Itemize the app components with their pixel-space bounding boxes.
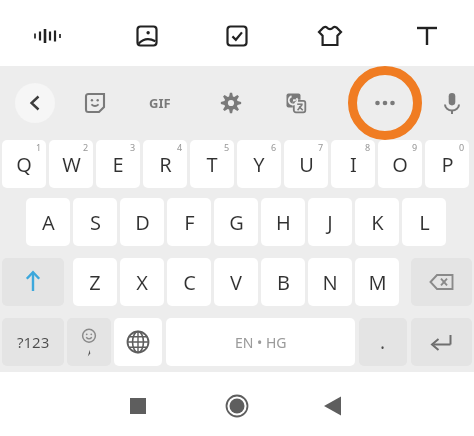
button[interactable]: K — [355, 198, 399, 246]
staticText: C — [183, 269, 196, 296]
button[interactable]: F — [167, 198, 211, 246]
staticText: Y — [253, 151, 265, 178]
button[interactable]: C — [167, 258, 211, 306]
button[interactable]: P — [425, 140, 469, 188]
staticText: . — [380, 329, 386, 355]
button[interactable]: Image — [125, 14, 169, 58]
button[interactable]: Backspace — [411, 258, 472, 306]
staticText: 4 — [177, 141, 183, 153]
button[interactable]: Shift — [2, 258, 64, 306]
staticText: Z — [89, 269, 101, 296]
button[interactable]: A — [26, 198, 70, 246]
button[interactable]: Stickers — [308, 14, 352, 58]
button[interactable]: E — [96, 140, 140, 188]
button[interactable]: . — [359, 318, 407, 366]
button[interactable]: Text — [405, 14, 449, 58]
button[interactable]: W — [49, 140, 93, 188]
button[interactable]: D — [120, 198, 164, 246]
button[interactable]: X — [120, 258, 164, 306]
staticText: U — [299, 151, 314, 178]
button[interactable]: H — [261, 198, 305, 246]
staticText: S — [90, 209, 101, 236]
staticText: G — [229, 209, 244, 236]
button[interactable]: Translate — [274, 81, 318, 125]
staticText: B — [277, 269, 290, 296]
staticText: EN • HG — [235, 333, 287, 352]
button[interactable]: Home — [217, 386, 257, 426]
staticText: H — [276, 209, 291, 236]
staticText: 5 — [224, 141, 230, 153]
button[interactable]: Q — [2, 140, 46, 188]
staticText: V — [230, 269, 242, 296]
button[interactable]: O — [378, 140, 422, 188]
staticText: GIF — [149, 94, 171, 112]
button[interactable]: V — [214, 258, 258, 306]
staticText: J — [327, 209, 333, 236]
button[interactable]: J — [308, 198, 352, 246]
staticText: 8 — [365, 141, 371, 153]
button[interactable]: B — [261, 258, 305, 306]
button[interactable]: More options — [363, 81, 407, 125]
staticText: F — [184, 209, 195, 236]
button[interactable]: Back — [15, 83, 55, 123]
staticText: ?123 — [17, 332, 50, 352]
staticText: 9 — [412, 141, 418, 153]
button[interactable]: L — [402, 198, 446, 246]
button[interactable]: Voice input — [430, 81, 474, 125]
button[interactable]: Y — [237, 140, 281, 188]
button[interactable]: Back — [313, 386, 353, 426]
button[interactable]: S — [73, 198, 117, 246]
staticText: R — [159, 151, 172, 178]
button[interactable]: Settings — [209, 81, 253, 125]
staticText: L — [419, 209, 430, 236]
button[interactable]: GIF — [138, 81, 182, 125]
button[interactable]: Tasks — [215, 14, 259, 58]
staticText: X — [136, 269, 148, 296]
button[interactable]: ?123 — [2, 318, 64, 366]
staticText: I — [350, 151, 357, 178]
staticText: 1 — [36, 141, 42, 153]
button[interactable]: Emoji — [67, 318, 111, 366]
staticText: D — [135, 209, 150, 236]
button[interactable]: R — [143, 140, 187, 188]
button[interactable]: Change language — [114, 318, 162, 366]
staticText: N — [322, 269, 338, 296]
button[interactable]: U — [284, 140, 328, 188]
staticText: 6 — [271, 141, 277, 153]
button[interactable]: G — [214, 198, 258, 246]
button[interactable]: EN • HG — [166, 318, 355, 366]
button[interactable]: Recent apps — [118, 386, 158, 426]
staticText: E — [112, 151, 124, 178]
button[interactable]: N — [308, 258, 352, 306]
button[interactable]: T — [190, 140, 234, 188]
staticText: 0 — [459, 141, 465, 153]
staticText: P — [441, 151, 454, 178]
staticText: A — [42, 209, 55, 236]
staticText: M — [368, 269, 387, 296]
button[interactable]: Enter — [411, 318, 472, 366]
button[interactable]: M — [355, 258, 399, 306]
staticText: O — [392, 151, 408, 178]
staticText: 3 — [130, 141, 136, 153]
button[interactable]: Voice — [26, 14, 70, 58]
button[interactable]: I — [331, 140, 375, 188]
staticText: W — [62, 151, 81, 178]
staticText: T — [206, 151, 218, 178]
button[interactable]: Z — [73, 258, 117, 306]
staticText: Q — [16, 151, 32, 178]
staticText: 7 — [318, 141, 324, 153]
staticText: K — [371, 209, 384, 236]
button[interactable]: Stickers — [73, 81, 117, 125]
staticText: 2 — [83, 141, 89, 153]
